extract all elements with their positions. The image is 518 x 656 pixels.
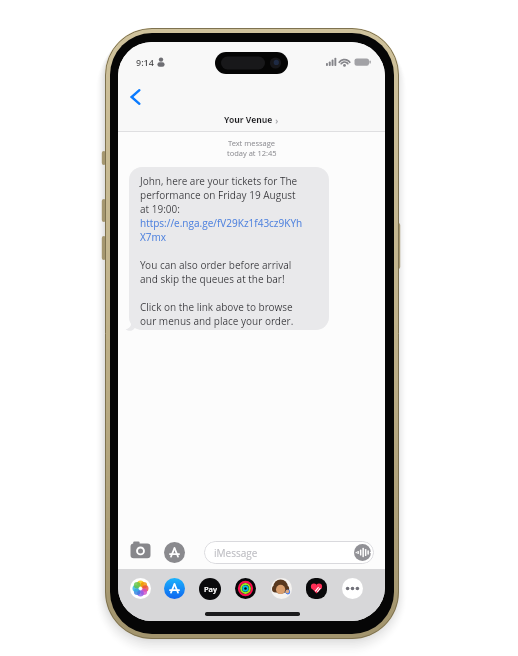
button[interactable] [271,578,292,599]
button[interactable]: iMessage [204,541,374,564]
button[interactable] [130,542,151,562]
staticText: Pay [204,584,217,594]
button[interactable] [164,578,185,599]
button[interactable]: Your Venue [118,114,385,126]
staticText: 9:14 [136,56,154,68]
button[interactable] [130,578,151,599]
staticText: › [273,114,279,126]
staticText: iMessage [214,546,258,560]
staticText: today at 12:45 [227,148,277,158]
button[interactable]: John, here are your tickets for The perf… [129,167,329,330]
button[interactable] [306,578,327,599]
button[interactable]: Pay [199,578,221,600]
button[interactable] [164,542,185,563]
button[interactable] [235,578,256,599]
button[interactable] [130,89,141,105]
staticText: Your Venue [224,114,273,126]
staticText: Text message [228,138,276,148]
button[interactable] [342,578,363,599]
staticText: John, here are your tickets for The perf… [140,174,303,328]
